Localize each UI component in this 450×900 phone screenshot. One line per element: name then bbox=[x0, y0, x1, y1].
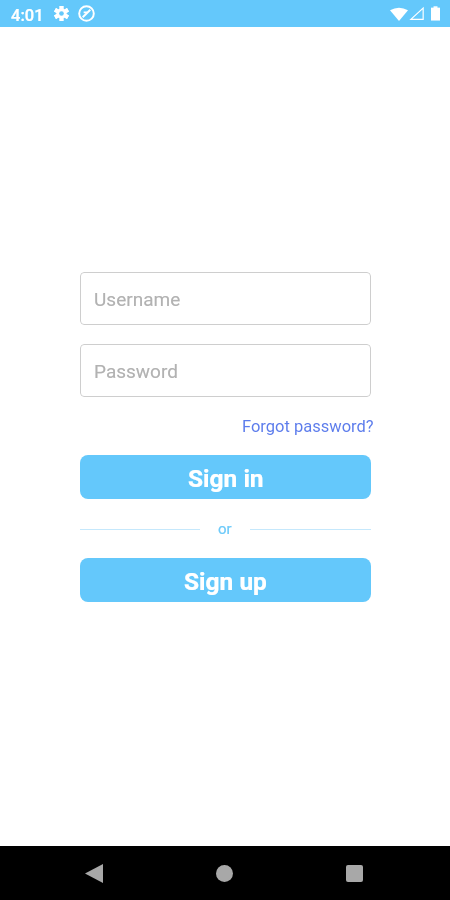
staticText: Forgot password? bbox=[242, 417, 374, 436]
button[interactable]: Forgot password? bbox=[242, 417, 374, 436]
staticText: 4:01 bbox=[11, 6, 44, 25]
button[interactable]: Password bbox=[80, 344, 371, 397]
staticText: Password bbox=[94, 360, 178, 382]
staticText: Sign up bbox=[184, 567, 267, 596]
button[interactable]: Username bbox=[80, 272, 371, 325]
staticText: or bbox=[218, 520, 232, 535]
button[interactable]: Recent apps bbox=[330, 849, 378, 897]
button[interactable]: Sign up bbox=[80, 558, 371, 602]
button[interactable]: Sign in bbox=[80, 455, 371, 499]
staticText: Username bbox=[94, 288, 181, 310]
button[interactable]: Home bbox=[200, 849, 248, 897]
button[interactable]: Back bbox=[70, 849, 118, 897]
staticText: Sign in bbox=[188, 464, 264, 493]
